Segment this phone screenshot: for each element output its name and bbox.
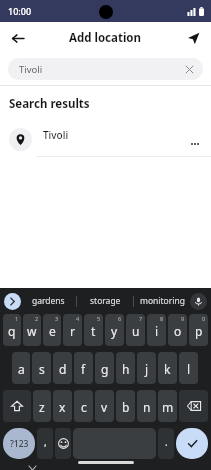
- button[interactable]: q: [3, 314, 21, 346]
- staticText: i: [155, 323, 159, 339]
- button[interactable]: e: [43, 314, 61, 346]
- button[interactable]: Enter: [176, 428, 208, 459]
- staticText: 2: [35, 315, 39, 322]
- staticText: 1: [15, 315, 19, 322]
- button[interactable]: storage: [77, 288, 133, 314]
- staticText: u: [132, 323, 140, 339]
- staticText: g: [101, 361, 109, 377]
- staticText: z: [39, 399, 45, 415]
- staticText: w: [27, 323, 37, 339]
- staticText: h: [122, 361, 130, 377]
- button[interactable]: Tivoli: [0, 122, 211, 156]
- button[interactable]: Emoji: [55, 428, 71, 459]
- button[interactable]: Back: [4, 25, 30, 51]
- button[interactable]: o: [168, 314, 187, 346]
- staticText: c: [81, 399, 87, 415]
- button[interactable]: y: [105, 314, 124, 346]
- button[interactable]: g: [95, 352, 114, 384]
- staticText: Tivoli: [19, 63, 43, 76]
- button[interactable]: l: [179, 352, 198, 384]
- staticText: ?123: [10, 438, 29, 450]
- staticText: storage: [90, 295, 121, 307]
- button[interactable]: Tivoli: [8, 58, 203, 80]
- button[interactable]: Clear search: [181, 61, 197, 77]
- button[interactable]: w: [23, 314, 41, 346]
- staticText: 7: [139, 315, 143, 322]
- staticText: e: [49, 323, 56, 339]
- staticText: m: [162, 399, 174, 415]
- staticText: s: [39, 361, 45, 377]
- button[interactable]: Comma: [37, 428, 53, 459]
- staticText: d: [59, 361, 67, 377]
- staticText: r: [70, 323, 75, 339]
- button[interactable]: r: [63, 314, 82, 346]
- staticText: y: [111, 323, 118, 339]
- staticText: 3: [55, 315, 59, 322]
- staticText: q: [8, 323, 16, 339]
- staticText: 4: [76, 315, 80, 322]
- button[interactable]: p: [189, 314, 208, 346]
- staticText: 10:00: [8, 5, 32, 17]
- staticText: 0: [202, 315, 206, 322]
- staticText: 9: [181, 315, 185, 322]
- staticText: Add location: [69, 30, 142, 46]
- button[interactable]: Backspace: [179, 390, 208, 422]
- button[interactable]: Symbols: [3, 428, 35, 459]
- button[interactable]: v: [95, 390, 114, 422]
- staticText: 6: [118, 315, 122, 322]
- staticText: monitoring: [140, 295, 185, 307]
- button[interactable]: i: [147, 314, 166, 346]
- staticText: Search results: [9, 96, 90, 112]
- staticText: n: [143, 399, 151, 415]
- button[interactable]: gardens: [21, 288, 76, 314]
- button[interactable]: c: [74, 390, 93, 422]
- staticText: gardens: [32, 295, 65, 307]
- staticText: j: [145, 361, 149, 377]
- button[interactable]: Hide keyboard: [25, 466, 39, 470]
- button[interactable]: More options: [183, 132, 207, 156]
- staticText: b: [122, 399, 130, 415]
- button[interactable]: n: [137, 390, 156, 422]
- button[interactable]: Use my location: [180, 25, 206, 51]
- staticText: l: [187, 361, 191, 377]
- button[interactable]: d: [53, 352, 72, 384]
- staticText: Tivoli: [43, 128, 69, 142]
- staticText: ,: [44, 435, 47, 449]
- staticText: f: [81, 361, 86, 377]
- button[interactable]: f: [74, 352, 93, 384]
- staticText: 5: [97, 315, 101, 322]
- button[interactable]: j: [137, 352, 156, 384]
- staticText: p: [195, 323, 203, 339]
- staticText: a: [18, 361, 25, 377]
- button[interactable]: m: [158, 390, 177, 422]
- staticText: v: [101, 399, 108, 415]
- button[interactable]: Period: [158, 428, 174, 459]
- staticText: x: [59, 399, 66, 415]
- button[interactable]: s: [32, 352, 51, 384]
- button[interactable]: b: [116, 390, 135, 422]
- button[interactable]: a: [12, 352, 30, 384]
- button[interactable]: k: [158, 352, 177, 384]
- button[interactable]: Expand suggestions: [4, 293, 21, 310]
- button[interactable]: x: [53, 390, 72, 422]
- button[interactable]: Voice input: [190, 293, 207, 310]
- staticText: .: [165, 435, 168, 449]
- staticText: o: [174, 323, 182, 339]
- button[interactable]: monitoring: [134, 288, 190, 314]
- button[interactable]: t: [84, 314, 103, 346]
- button[interactable]: h: [116, 352, 135, 384]
- staticText: 8: [160, 315, 164, 322]
- staticText: k: [164, 361, 171, 377]
- staticText: t: [91, 323, 96, 339]
- button[interactable]: z: [33, 390, 51, 422]
- button[interactable]: Shift: [3, 390, 31, 422]
- button[interactable]: u: [126, 314, 145, 346]
